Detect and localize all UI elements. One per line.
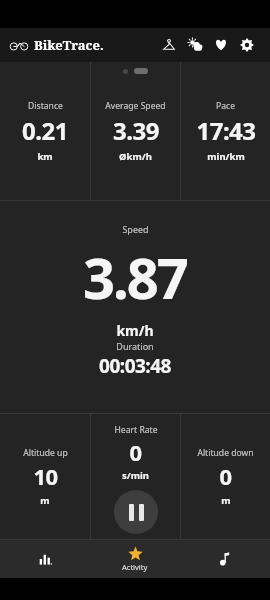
staticText: 0 bbox=[219, 461, 232, 491]
staticText: 17:43 bbox=[196, 114, 256, 147]
button[interactable]: Heart rate bbox=[208, 32, 234, 58]
staticText: BikeTrace. bbox=[34, 36, 104, 54]
staticText: Activity bbox=[122, 562, 148, 572]
staticText: Distance bbox=[28, 100, 63, 112]
staticText: 10 bbox=[33, 461, 58, 491]
staticText: 3.87 bbox=[83, 239, 187, 315]
button[interactable]: Weather bbox=[182, 32, 208, 58]
staticText: min/km bbox=[207, 150, 245, 163]
staticText: Pace bbox=[216, 100, 235, 112]
button[interactable]: Gear bbox=[156, 32, 182, 58]
button[interactable]: Music bbox=[180, 540, 270, 578]
staticText: s/min bbox=[122, 469, 149, 482]
staticText: m bbox=[40, 494, 50, 507]
button[interactable]: Statistics bbox=[0, 540, 90, 578]
staticText: Speed bbox=[122, 223, 149, 235]
staticText: 3.39 bbox=[113, 114, 159, 147]
button[interactable]: Average Speed bbox=[91, 62, 180, 200]
button[interactable]: Altitude down bbox=[181, 414, 270, 539]
staticText: Altitude down bbox=[197, 447, 254, 459]
staticText: 0 bbox=[129, 437, 142, 467]
button[interactable]: Pace bbox=[181, 62, 270, 200]
staticText: 00:03:48 bbox=[99, 353, 171, 379]
staticText: 0.21 bbox=[22, 114, 68, 147]
button[interactable]: Pause bbox=[114, 490, 158, 534]
button[interactable]: Settings bbox=[234, 32, 260, 58]
staticText: Average Speed bbox=[105, 100, 166, 112]
staticText: km bbox=[37, 150, 53, 163]
staticText: Duration bbox=[116, 340, 154, 352]
button[interactable]: Altitude up bbox=[0, 414, 90, 539]
staticText: Økm/h bbox=[119, 150, 152, 163]
button[interactable]: Distance bbox=[0, 62, 90, 200]
staticText: km/h bbox=[116, 321, 154, 340]
button[interactable]: Activity bbox=[90, 540, 180, 578]
staticText: Heart Rate bbox=[114, 424, 158, 436]
staticText: m bbox=[221, 494, 231, 507]
staticText: Altitude up bbox=[23, 447, 68, 459]
